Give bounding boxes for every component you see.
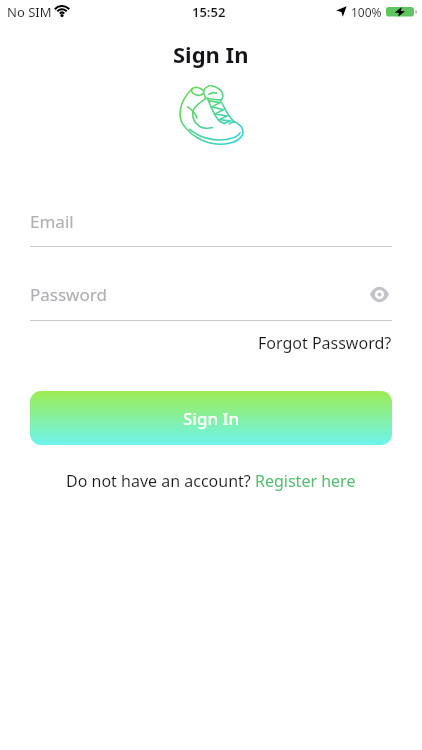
staticText: Password bbox=[30, 283, 107, 306]
staticText: No SIM bbox=[7, 3, 52, 21]
staticText: 15:52 bbox=[192, 3, 226, 21]
staticText: Do not have an account? bbox=[66, 470, 255, 492]
button[interactable]: Forgot Password? bbox=[258, 332, 392, 354]
button[interactable] bbox=[176, 81, 246, 151]
staticText: Sign In bbox=[183, 407, 240, 430]
button[interactable] bbox=[370, 287, 389, 302]
staticText: Sign In bbox=[173, 39, 249, 69]
button[interactable]: Register here bbox=[255, 470, 356, 492]
button[interactable]: Sign In bbox=[30, 391, 392, 445]
staticText: 100% bbox=[351, 4, 382, 20]
button[interactable]: Password bbox=[30, 279, 392, 321]
button[interactable]: Email bbox=[30, 205, 392, 247]
staticText: Email bbox=[30, 210, 74, 233]
